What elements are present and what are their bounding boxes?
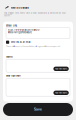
staticText: https://www.gmail.com/mail/u/0/ #inbox/F… [8, 29, 40, 34]
staticText: This Trigger fires every time a new book… [4, 12, 66, 17]
staticText: Save [34, 108, 42, 111]
staticText: Send this as an email [11, 41, 30, 43]
button[interactable]: Send this as an email [6, 40, 70, 44]
staticText: New Bookmark [11, 6, 29, 9]
button[interactable]: Add variable [53, 67, 69, 71]
button[interactable]: Add variable [53, 91, 69, 95]
staticText: Body (optional) [6, 74, 21, 77]
staticText: Email URL [6, 24, 17, 27]
staticText: Add variable [55, 67, 67, 70]
button[interactable]: Save [3, 103, 73, 116]
staticText: This email will be sent to the specified… [6, 45, 60, 47]
staticText: Subject [6, 55, 13, 58]
staticText: Add variable [55, 91, 67, 94]
